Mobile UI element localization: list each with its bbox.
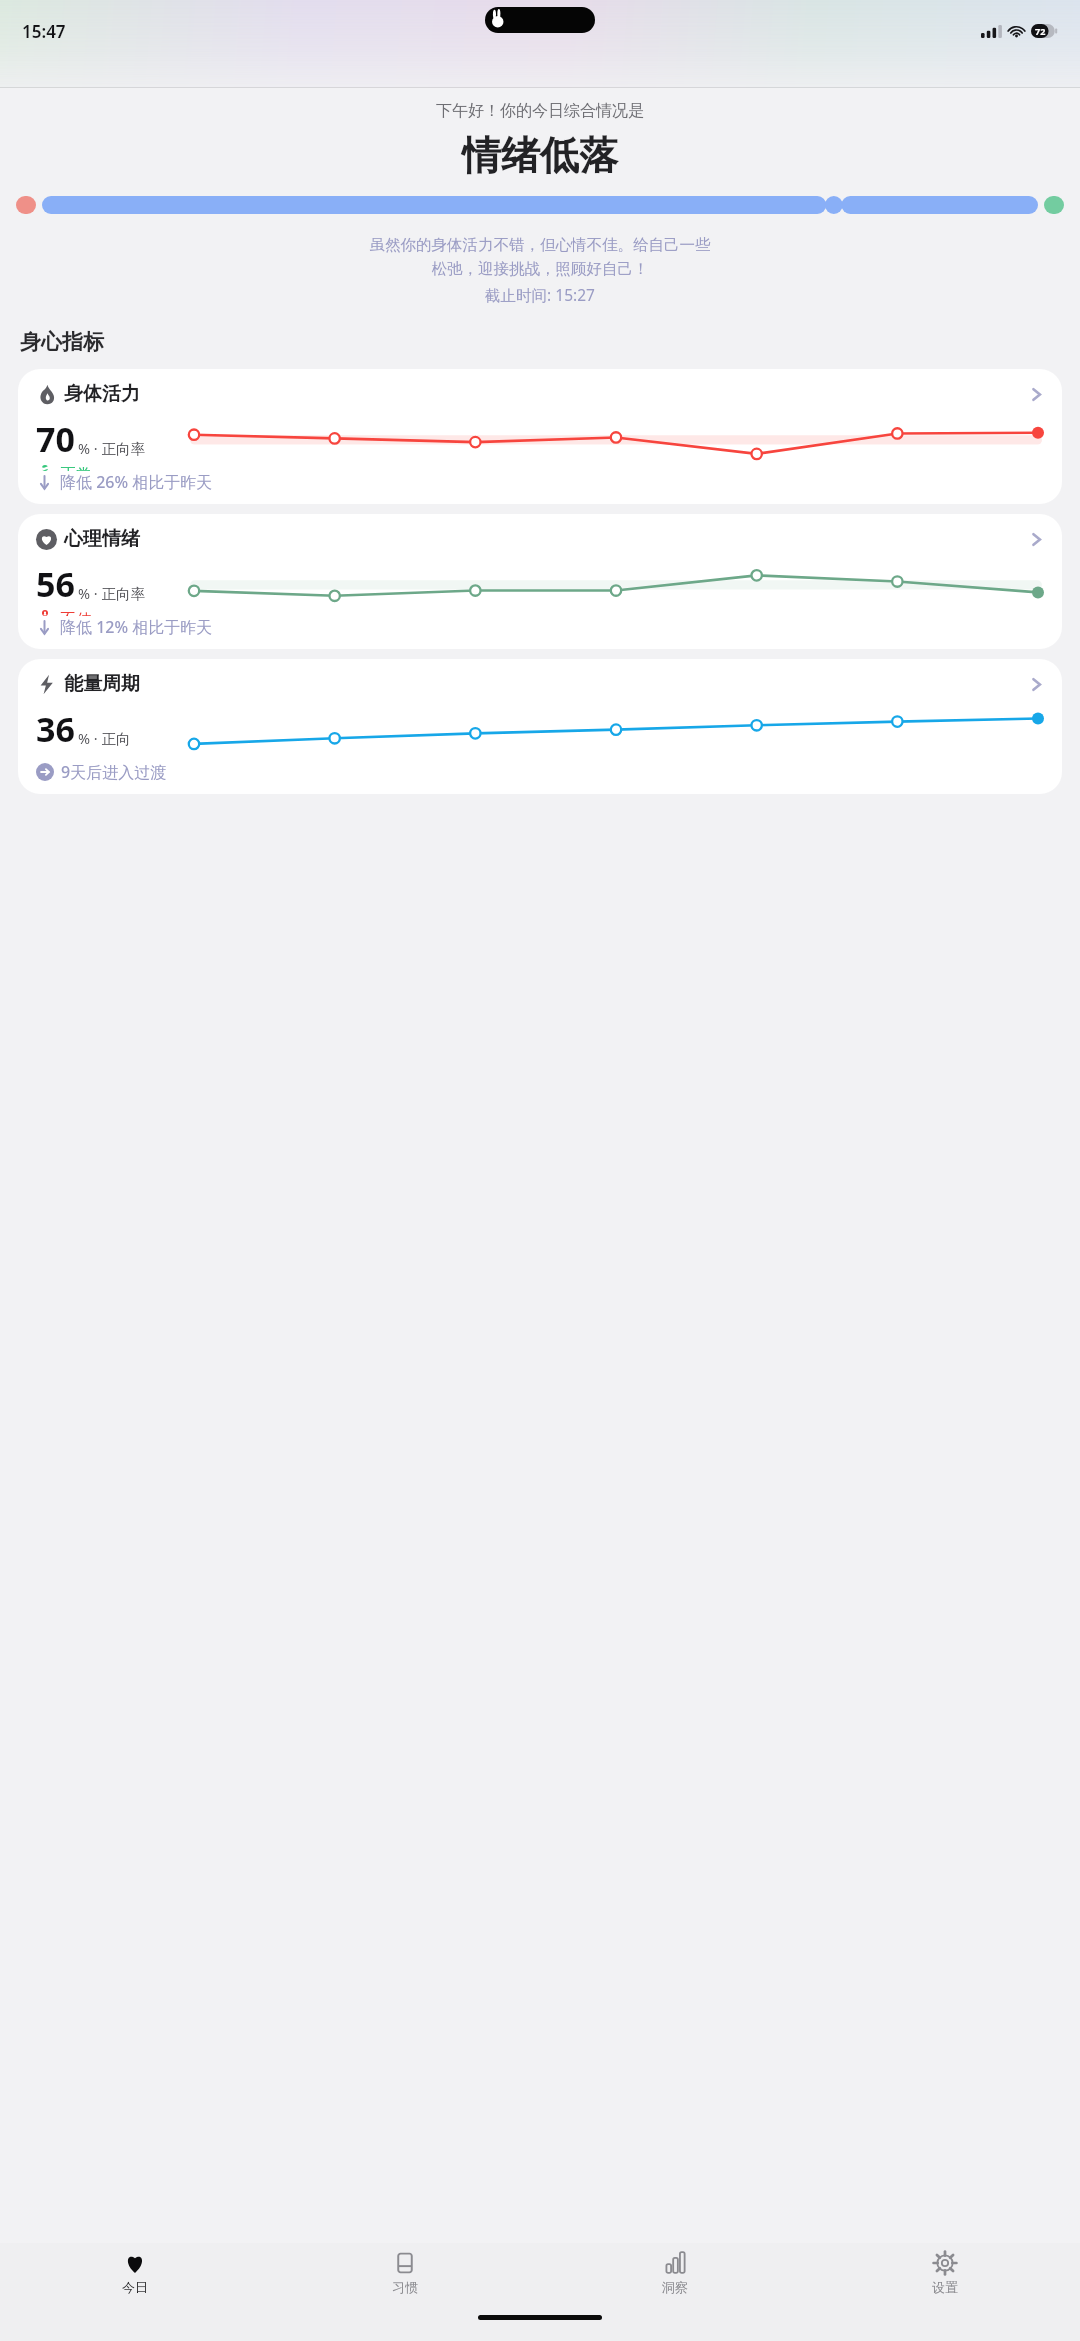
staticText: 情绪低落 <box>0 131 1080 180</box>
staticText: 虽然你的身体活力不错，但心情不佳。给自己一些 松弛，迎接挑战，照顾好自己！ <box>22 235 1058 279</box>
staticText: % · 正向率 <box>78 438 145 458</box>
staticText: 9天后进入过渡 <box>61 761 167 783</box>
staticText: 降低 26% 相比于昨天 <box>60 471 213 493</box>
button[interactable]: 设置 <box>810 2243 1080 2301</box>
other: 查看心理情绪 详情 <box>1027 530 1046 549</box>
staticText: 不佳 <box>60 610 92 616</box>
staticText: 洞察 <box>662 2279 688 2295</box>
button[interactable]: 洞察 <box>540 2243 810 2301</box>
staticText: 设置 <box>932 2279 958 2295</box>
staticText: 截止时间: 15:27 <box>0 284 1080 305</box>
button[interactable]: 能量周期 <box>18 659 1062 794</box>
staticText: % · 正向率 <box>78 583 145 603</box>
staticText: 身心指标 <box>20 329 104 355</box>
other: 查看能量周期 详情 <box>1027 675 1046 694</box>
staticText: 心理情绪 <box>64 527 140 551</box>
staticText: 习惯 <box>392 2279 418 2295</box>
staticText: % · 正向 <box>78 728 131 748</box>
staticText: 能量周期 <box>64 672 140 696</box>
button[interactable]: 习惯 <box>270 2243 540 2301</box>
staticText: 72 <box>1035 25 1046 37</box>
button[interactable]: 心理情绪 <box>18 514 1062 649</box>
staticText: 身体活力 <box>64 382 140 406</box>
staticText: 70 <box>36 416 75 462</box>
button[interactable]: 今日 <box>0 2243 270 2301</box>
staticText: 今日 <box>122 2279 148 2295</box>
staticText: 56 <box>36 561 75 607</box>
staticText: 下午好！你的今日综合情况是 <box>0 101 1080 121</box>
button[interactable]: 身体活力 <box>18 369 1062 504</box>
other: 查看身体活力 详情 <box>1027 385 1046 404</box>
staticText: 36 <box>36 706 75 752</box>
staticText: 正常 <box>60 465 92 471</box>
staticText: 降低 12% 相比于昨天 <box>60 616 213 638</box>
staticText: 15:47 <box>22 20 66 43</box>
